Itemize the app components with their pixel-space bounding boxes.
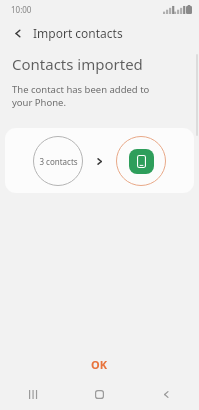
staticText: Import contacts (33, 25, 123, 41)
staticText: Contacts imported (12, 54, 143, 74)
button[interactable]: Home (82, 379, 116, 410)
button[interactable]: 3 contacts (5, 128, 194, 193)
button[interactable]: OK (0, 349, 199, 379)
button[interactable]: Recent apps (16, 379, 50, 410)
staticText: 3 contacts (39, 156, 78, 167)
staticText: The contact has been added to your Phone… (12, 83, 169, 109)
button[interactable]: Back (6, 21, 30, 45)
button[interactable]: Back (149, 379, 183, 410)
staticText: 10:00 (11, 4, 32, 15)
staticText: OK (91, 357, 108, 372)
